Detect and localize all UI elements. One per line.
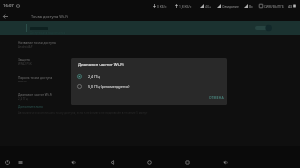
staticText: СИМ/ВЫПГБ xyxy=(264,4,284,8)
button[interactable]: 5,0 ГГц (рекомендуется) xyxy=(71,82,227,92)
button[interactable]: ОТМЕНА xyxy=(207,94,226,100)
staticText: 2,4 ГГц xyxy=(88,74,100,79)
button[interactable]: Главный экран xyxy=(144,157,155,168)
button[interactable]: Защита xyxy=(0,56,300,73)
staticText: 1,8 КБ/с xyxy=(179,4,192,8)
button[interactable]: Назад xyxy=(107,157,118,168)
button[interactable]: Быстрые настройки xyxy=(15,157,26,168)
button[interactable]: Питание xyxy=(2,157,13,168)
staticText: ОТМЕНА xyxy=(209,95,224,99)
staticText: 43 xyxy=(288,4,292,8)
staticText: WPA2 PSK xyxy=(18,62,32,66)
staticText: 5,0 ГГц (рекомендуется) xyxy=(88,84,130,89)
staticText: 16:07 xyxy=(3,3,14,9)
staticText: Вх xyxy=(249,4,253,8)
button[interactable]: Громкость xyxy=(68,157,79,168)
staticText: Диапазон частот Wi-Fi xyxy=(78,61,124,67)
button[interactable]: Пароль точки доступа xyxy=(0,74,300,91)
staticText: Точка доступа Wi-Fi xyxy=(31,14,69,19)
staticText: 2,4 ГГц xyxy=(18,97,28,101)
staticText: AndroidAP xyxy=(18,45,33,49)
staticText: Дополнительно xyxy=(18,105,43,109)
staticText: Пароль точки доступа xyxy=(18,76,53,80)
button[interactable]: Диапазон частот Wi-Fi xyxy=(0,91,300,108)
staticText: Защита xyxy=(18,58,30,62)
staticText: Ожидание xyxy=(222,4,239,8)
button[interactable]: Назад xyxy=(0,11,11,21)
staticText: Автоматически отключать точку доступа, е… xyxy=(18,111,148,115)
button[interactable]: Громкость xyxy=(220,157,231,168)
button[interactable]: 2,4 ГГц xyxy=(71,72,227,82)
button[interactable]: Название точки доступа xyxy=(0,39,300,56)
staticText: Диапазон частот Wi-Fi xyxy=(18,93,53,97)
staticText: Название точки доступа xyxy=(18,41,56,45)
staticText: 0 КБ/с xyxy=(157,4,167,8)
staticText: 4G+ xyxy=(205,4,212,8)
staticText: •••••••• xyxy=(18,80,27,84)
button[interactable]: Недавние приложения xyxy=(182,157,193,168)
